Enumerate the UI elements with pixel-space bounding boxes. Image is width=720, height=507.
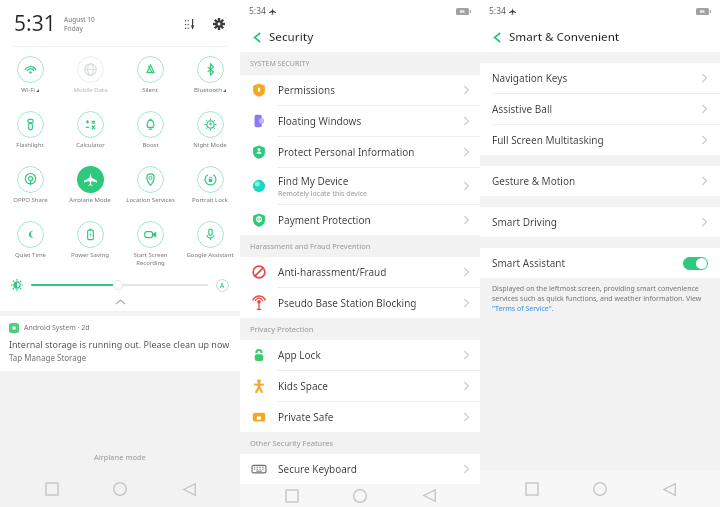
button[interactable]: Back bbox=[412, 484, 446, 507]
button[interactable]: Back bbox=[172, 472, 206, 506]
button[interactable]: Gesture & Motion bbox=[480, 166, 720, 196]
staticText: SYSTEM SECURITY bbox=[250, 59, 310, 69]
staticText: Portrait Lock bbox=[192, 196, 228, 204]
button[interactable]: Protect Personal Information bbox=[240, 137, 480, 168]
staticText: OPPO Share bbox=[13, 196, 48, 204]
button[interactable]: Android System · 2d bbox=[0, 316, 240, 371]
button[interactable]: Location Services bbox=[120, 161, 180, 216]
staticText: Payment Protection bbox=[278, 213, 371, 227]
staticText: Displayed on the leftmost screen, provid… bbox=[492, 284, 710, 304]
staticText: Friday bbox=[64, 24, 83, 33]
staticText: August 10 bbox=[64, 15, 95, 24]
staticText: Flashlight bbox=[16, 141, 44, 149]
staticText: Protect Personal Information bbox=[278, 145, 415, 159]
button[interactable]: Private Safe bbox=[240, 402, 480, 432]
staticText: Power Saving bbox=[71, 251, 109, 259]
staticText: App Lock bbox=[278, 348, 321, 362]
button[interactable]: Find My Device bbox=[240, 168, 480, 205]
button[interactable]: Permissions bbox=[240, 75, 480, 106]
staticText: Smart Driving bbox=[492, 215, 557, 229]
button[interactable]: Kids Space bbox=[240, 371, 480, 402]
staticText: Permissions bbox=[278, 83, 335, 97]
button[interactable]: Night Mode bbox=[180, 106, 240, 161]
button[interactable]: Home bbox=[343, 484, 377, 507]
staticText: Navigation Keys bbox=[492, 71, 568, 85]
button[interactable]: Auto brightness bbox=[216, 279, 229, 292]
staticText: 5:34 bbox=[489, 5, 506, 17]
button[interactable]: Secure Keyboard bbox=[240, 454, 480, 484]
staticText: Pseudo Base Station Blocking bbox=[278, 296, 417, 310]
button[interactable]: Back bbox=[247, 27, 267, 47]
button[interactable]: Quiet Time bbox=[0, 216, 60, 271]
button[interactable]: Home bbox=[103, 472, 137, 506]
button[interactable]: Smart Assistant bbox=[480, 248, 720, 278]
staticText: Google Assistant bbox=[186, 251, 234, 259]
button[interactable]: Bluetooth bbox=[180, 51, 240, 106]
button[interactable]: Floating Windows bbox=[240, 106, 480, 137]
staticText: Android System · 2d bbox=[24, 323, 90, 333]
staticText: 5:31 bbox=[14, 9, 56, 38]
button[interactable]: Edit tiles bbox=[179, 14, 199, 34]
button[interactable]: Full Screen Multitasking bbox=[480, 125, 720, 155]
staticText: Airplane mode bbox=[94, 452, 146, 462]
button[interactable]: Navigation Keys bbox=[480, 63, 720, 94]
staticText: 85 bbox=[460, 9, 465, 14]
staticText: Bluetooth bbox=[194, 86, 222, 94]
staticText: Wi-Fi bbox=[21, 86, 35, 94]
staticText: Anti-harassment/Fraud bbox=[278, 265, 387, 279]
staticText: Boost bbox=[142, 141, 159, 149]
button[interactable]: Anti-harassment/Fraud bbox=[240, 257, 480, 288]
button[interactable]: Flashlight bbox=[0, 106, 60, 161]
staticText: Remotely locate this device bbox=[278, 189, 367, 199]
staticText: Smart & Convenient bbox=[509, 29, 620, 45]
button[interactable]: Recents bbox=[35, 472, 69, 506]
staticText: Find My Device bbox=[278, 174, 349, 188]
button[interactable]: Silent bbox=[120, 51, 180, 106]
button[interactable]: Recents bbox=[515, 472, 549, 506]
button[interactable]: App Lock bbox=[240, 340, 480, 371]
staticText: Tap Manage Storage bbox=[9, 352, 87, 363]
button[interactable]: Calculator bbox=[60, 106, 120, 161]
button[interactable]: Portrait Lock bbox=[180, 161, 240, 216]
staticText: Security bbox=[269, 29, 314, 45]
button[interactable]: Home bbox=[583, 472, 617, 506]
staticText: Start Screen Recording bbox=[133, 251, 168, 267]
staticText: Airplane Mode bbox=[69, 196, 111, 204]
button[interactable]: Google Assistant bbox=[180, 216, 240, 271]
button[interactable]: Smart Driving bbox=[480, 207, 720, 237]
button[interactable]: Power Saving bbox=[60, 216, 120, 271]
staticText: Secure Keyboard bbox=[278, 462, 357, 476]
staticText: Privacy Protection bbox=[250, 324, 314, 334]
staticText: "Terms of Service". bbox=[492, 304, 554, 314]
button[interactable]: Assistive Ball bbox=[480, 94, 720, 125]
button[interactable]: Mobile Data bbox=[60, 51, 120, 106]
staticText: Calculator bbox=[76, 141, 105, 149]
button[interactable]: Payment Protection bbox=[240, 205, 480, 235]
button[interactable]: Airplane Mode bbox=[60, 161, 120, 216]
staticText: Mobile Data bbox=[73, 86, 108, 94]
button[interactable]: Wi-Fi bbox=[0, 51, 60, 106]
button[interactable]: Boost bbox=[120, 106, 180, 161]
button[interactable]: Back bbox=[652, 472, 686, 506]
staticText: A bbox=[220, 281, 225, 290]
staticText: Night Mode bbox=[193, 141, 227, 149]
staticText: Gesture & Motion bbox=[492, 174, 576, 188]
button[interactable]: Back bbox=[487, 27, 507, 47]
button[interactable]: Settings bbox=[209, 14, 229, 34]
button[interactable]: Start Screen Recording bbox=[120, 216, 180, 271]
button[interactable]: Pseudo Base Station Blocking bbox=[240, 288, 480, 318]
staticText: 5:34 bbox=[249, 5, 266, 17]
staticText: Full Screen Multitasking bbox=[492, 133, 604, 147]
staticText: Other Security Features bbox=[250, 438, 334, 448]
button[interactable]: Recents bbox=[275, 484, 309, 507]
staticText: Private Safe bbox=[278, 410, 334, 424]
staticText: Internal storage is running out. Please … bbox=[9, 338, 230, 350]
staticText: Location Services bbox=[126, 196, 175, 204]
staticText: 85 bbox=[700, 9, 705, 14]
button[interactable]: Collapse panel bbox=[0, 295, 240, 308]
staticText: Silent bbox=[142, 86, 158, 94]
staticText: Kids Space bbox=[278, 379, 328, 393]
staticText: Quiet Time bbox=[15, 251, 46, 259]
staticText: Floating Windows bbox=[278, 114, 362, 128]
button[interactable]: OPPO Share bbox=[0, 161, 60, 216]
